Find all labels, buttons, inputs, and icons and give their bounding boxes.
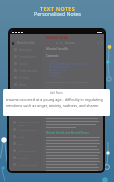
staticText: Mental health is a state of mind that... [46,80,91,83]
button[interactable]: See also [46,74,100,77]
staticText: Contributions [19,55,36,59]
button[interactable]: Social factors [46,68,100,71]
staticText: WIKIPEDIA [46,35,69,40]
staticText: Mental health and mental illness [49,62,89,65]
staticText: Social factors [49,68,66,71]
staticText: trauma occurred at a young age - difficu… [6,97,107,108]
staticText: TEXT NOTES [40,5,75,12]
staticText: Mental disorders [18,128,38,131]
button[interactable]: Create account [13,147,43,154]
button[interactable]: About Wikipedia [13,161,43,168]
button[interactable]: About [14,81,42,88]
staticText: History [49,59,58,62]
staticText: Mental health [46,47,69,51]
staticText: About [19,83,27,87]
button[interactable]: Contributions [14,53,42,60]
button[interactable]: Create account [14,67,42,74]
staticText: Mental health [17,41,35,45]
staticText: Personalized Notes [34,10,81,17]
button[interactable]: Main page [14,46,42,53]
button[interactable]: Mental disorders [46,65,100,68]
staticText: Mental disorders [49,65,70,68]
staticText: Add Notes [6,91,107,95]
staticText: Sources [65,41,75,45]
staticText: Main page [19,48,32,52]
button[interactable]: Mental health and mental illness [46,62,100,65]
staticText: Create account [19,69,38,73]
button[interactable]: Settings [14,74,42,81]
staticText: Contents [46,54,59,58]
staticText: Mental health and illness [18,120,43,126]
staticText: Create account [18,149,36,152]
staticText: Bias [18,142,23,145]
button[interactable]: Treatment [46,71,100,74]
staticText: Settings [19,76,29,80]
button[interactable]: Mental health and illness [13,119,43,126]
button[interactable]: History [46,59,100,62]
staticText: Saved [18,135,25,138]
staticText: About Wikipedia [18,163,38,166]
staticText: Saved [19,62,27,66]
staticText: See also [49,74,59,77]
staticText: Mental Health and Mental Illness [46,131,89,135]
button[interactable]: Mental disorders [13,126,43,133]
button[interactable]: Saved [14,60,42,67]
staticText: Treatment [49,71,62,74]
staticText: Settings [18,156,28,159]
